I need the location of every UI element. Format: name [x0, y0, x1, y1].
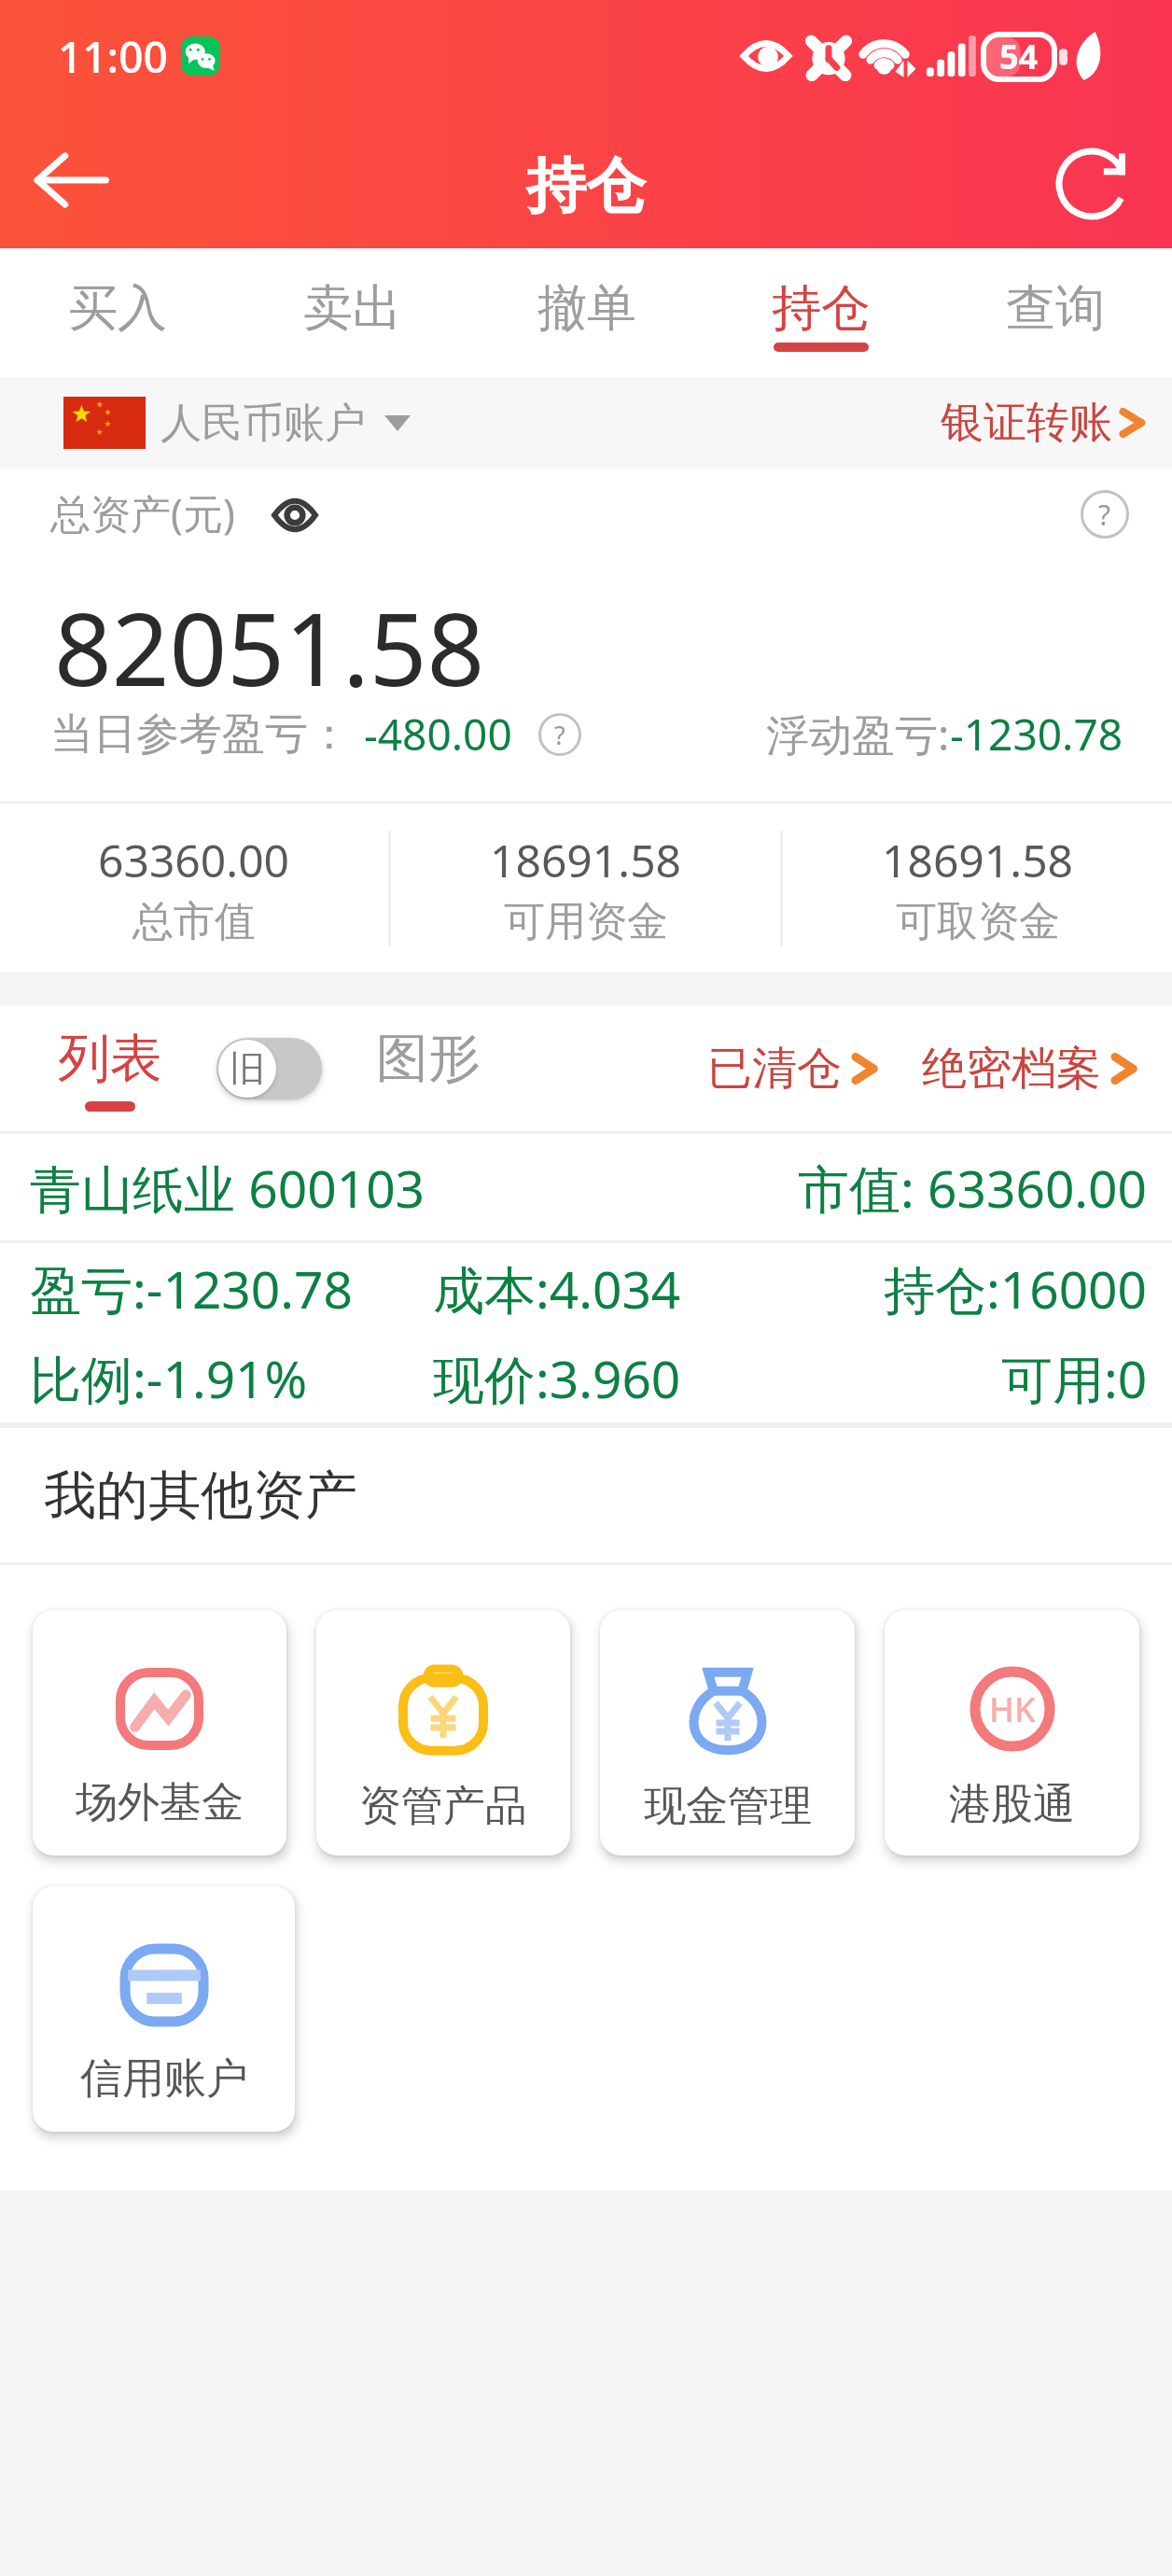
button[interactable]: 持仓 [704, 248, 938, 377]
button[interactable]: 绝密档案 [922, 1029, 1140, 1108]
staticText: 当日参考盈亏： [50, 707, 351, 762]
staticText: 银证转账 [941, 396, 1112, 450]
button[interactable]: 人民币账户 [0, 377, 1172, 469]
staticText: -1230.78 [950, 705, 1123, 763]
staticText: -480.00 [364, 705, 512, 763]
button[interactable]: 查询 [938, 248, 1172, 377]
button[interactable]: 买入 [0, 248, 235, 377]
staticText: 卖出 [303, 277, 402, 340]
staticText: 可取资金 [896, 896, 1060, 947]
button[interactable]: 18691.58 [783, 830, 1172, 947]
staticText: 已清仓 [707, 1041, 842, 1097]
staticText: 图形 [376, 1026, 481, 1092]
button[interactable]: 图形 [376, 1026, 481, 1112]
staticText: 资管产品 [359, 1780, 527, 1833]
staticText: 总资产(元) [50, 485, 235, 540]
staticText: 我的其他资产 [44, 1463, 357, 1529]
staticText: 18691.58 [882, 830, 1074, 890]
button[interactable]: Switch to old view [216, 1038, 322, 1099]
staticText: 可用:0 [1001, 1343, 1148, 1413]
button[interactable]: HK [885, 1610, 1139, 1855]
staticText: HK [989, 1687, 1036, 1732]
button[interactable]: 已清仓 [707, 1029, 881, 1108]
button[interactable]: Toggle amount visibility [269, 493, 321, 538]
button[interactable]: 63360.00 [0, 830, 388, 947]
staticText: 盈亏:-1230.78 [30, 1253, 353, 1323]
staticText: 撤单 [537, 277, 636, 340]
staticText: 18691.58 [490, 830, 682, 890]
staticText: 11:00 [58, 27, 168, 86]
staticText: 成本:4.034 [433, 1253, 681, 1323]
staticText: 可用资金 [504, 896, 668, 947]
button[interactable]: 青山纸业 600103 [0, 1134, 1172, 1422]
button[interactable]: Back [15, 124, 127, 236]
button[interactable]: 银证转账 [941, 386, 1148, 459]
staticText: 青山纸业 600103 [30, 1153, 426, 1223]
staticText: 82051.58 [54, 579, 485, 698]
button[interactable]: 撤单 [469, 248, 704, 377]
button[interactable]: 资管产品 [316, 1610, 570, 1855]
staticText: ? [554, 718, 565, 752]
staticText: 港股通 [949, 1778, 1075, 1831]
button[interactable]: 场外基金 [33, 1610, 286, 1855]
staticText: 现价:3.960 [433, 1343, 681, 1413]
button[interactable]: Help [1075, 484, 1135, 544]
button[interactable]: 18691.58 [391, 830, 780, 947]
staticText: 现金管理 [644, 1780, 812, 1833]
button[interactable]: 现金管理 [600, 1610, 855, 1855]
staticText: 市值: 63360.00 [798, 1153, 1148, 1223]
staticText: 查询 [1006, 277, 1105, 340]
staticText: ? [1098, 496, 1111, 534]
staticText: 浮动盈亏: [766, 705, 950, 763]
staticText: 场外基金 [76, 1776, 244, 1829]
staticText: 持仓:16000 [884, 1253, 1148, 1323]
staticText: 持仓 [526, 148, 646, 224]
staticText: 总市值 [133, 896, 256, 947]
button[interactable]: 信用账户 [33, 1886, 295, 2132]
staticText: 列表 [58, 1026, 162, 1092]
staticText: 旧 [230, 1046, 265, 1091]
staticText: 信用账户 [80, 2052, 248, 2106]
staticText: 63360.00 [98, 830, 290, 890]
staticText: 54 [999, 34, 1039, 79]
button[interactable]: 卖出 [235, 248, 469, 377]
button[interactable]: Help [537, 711, 583, 758]
staticText: 持仓 [772, 277, 871, 340]
button[interactable]: Refresh [1036, 124, 1148, 236]
staticText: 人民币账户 [160, 398, 366, 449]
staticText: 买入 [68, 277, 167, 340]
staticText: 比例:-1.91% [30, 1343, 308, 1413]
staticText: 绝密档案 [922, 1041, 1101, 1097]
button[interactable]: 列表 [58, 1026, 162, 1112]
